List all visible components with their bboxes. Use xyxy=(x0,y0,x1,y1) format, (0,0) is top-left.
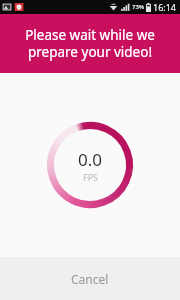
staticText: Cancel xyxy=(71,271,109,287)
other: Security notification xyxy=(14,2,24,12)
other: Screenshot notification xyxy=(2,2,12,12)
staticText: Please wait while we prepare your video! xyxy=(25,26,155,61)
button[interactable]: Cancel xyxy=(0,257,180,300)
staticText: 0.0 xyxy=(78,148,103,171)
staticText: FPS xyxy=(83,171,99,183)
staticText: 16:14 xyxy=(153,1,177,13)
staticText: 73% xyxy=(132,3,145,11)
